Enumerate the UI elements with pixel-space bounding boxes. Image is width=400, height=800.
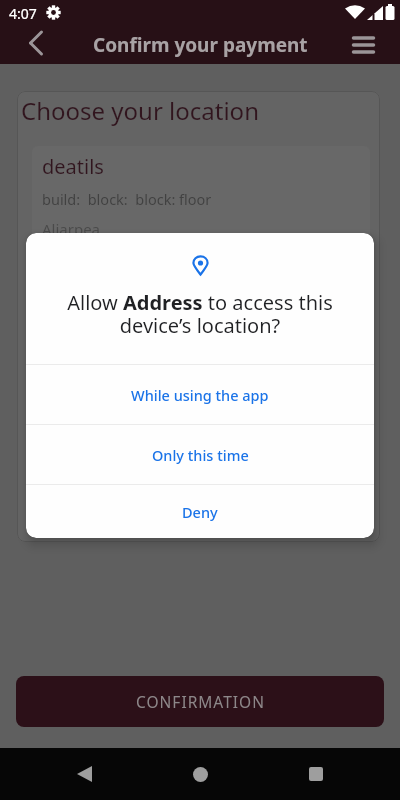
button[interactable]: CONFIRMATION	[16, 676, 384, 727]
button[interactable]	[64, 760, 104, 788]
button[interactable]: While using the app	[26, 365, 374, 424]
staticText: Deny	[182, 502, 218, 522]
button[interactable]	[180, 760, 220, 788]
staticText: 4:07	[9, 4, 37, 23]
staticText: CONFIRMATION	[136, 691, 265, 712]
staticText: Allow Address to access this device’s lo…	[26, 289, 374, 339]
staticText: deatils	[42, 153, 104, 180]
staticText: Choose your location	[21, 94, 259, 127]
button[interactable]	[19, 26, 53, 60]
button[interactable]: Deny	[26, 485, 374, 538]
button[interactable]	[296, 760, 336, 788]
staticText: Only this time	[152, 445, 249, 465]
staticText: Aljarpea	[42, 219, 101, 239]
staticText: Confirm your payment	[93, 32, 308, 58]
staticText: While using the app	[131, 385, 269, 405]
button[interactable]	[346, 28, 380, 62]
staticText: build: block: block: floor	[42, 189, 212, 209]
button[interactable]: Only this time	[26, 425, 374, 484]
